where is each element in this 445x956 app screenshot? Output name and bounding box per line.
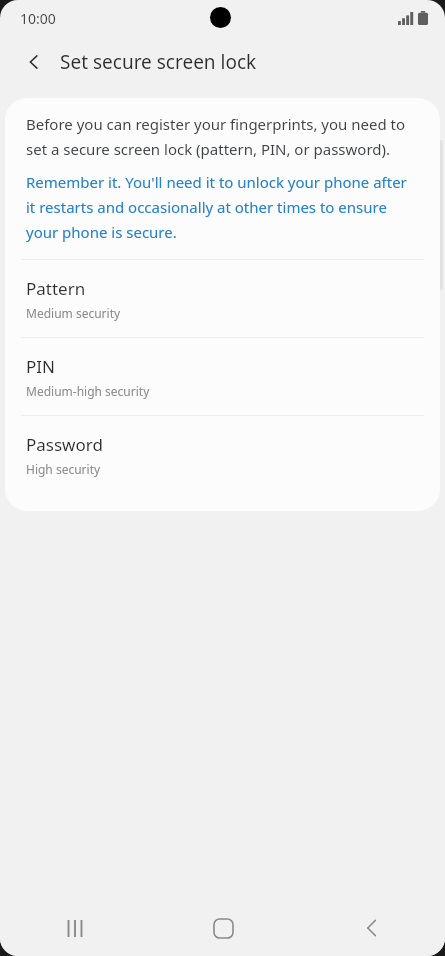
staticText: 10:00 (20, 9, 56, 28)
staticText: PIN (26, 355, 55, 378)
button[interactable]: Pattern (5, 260, 440, 337)
staticText: Medium security (26, 305, 121, 321)
staticText: High security (26, 461, 101, 477)
button[interactable]: Recent apps (0, 900, 149, 956)
button[interactable]: PIN (5, 338, 440, 415)
staticText: Medium-high security (26, 383, 150, 399)
staticText: Before you can register your fingerprint… (26, 114, 414, 159)
button[interactable]: Back (297, 900, 445, 956)
button[interactable]: Password (5, 416, 440, 493)
staticText: Password (26, 433, 103, 456)
staticText: Set secure screen lock (60, 49, 257, 75)
button[interactable]: Home (149, 900, 297, 956)
staticText: Pattern (26, 277, 86, 300)
button[interactable]: Back (14, 42, 54, 82)
staticText: Remember it. You'll need it to unlock yo… (26, 172, 418, 242)
